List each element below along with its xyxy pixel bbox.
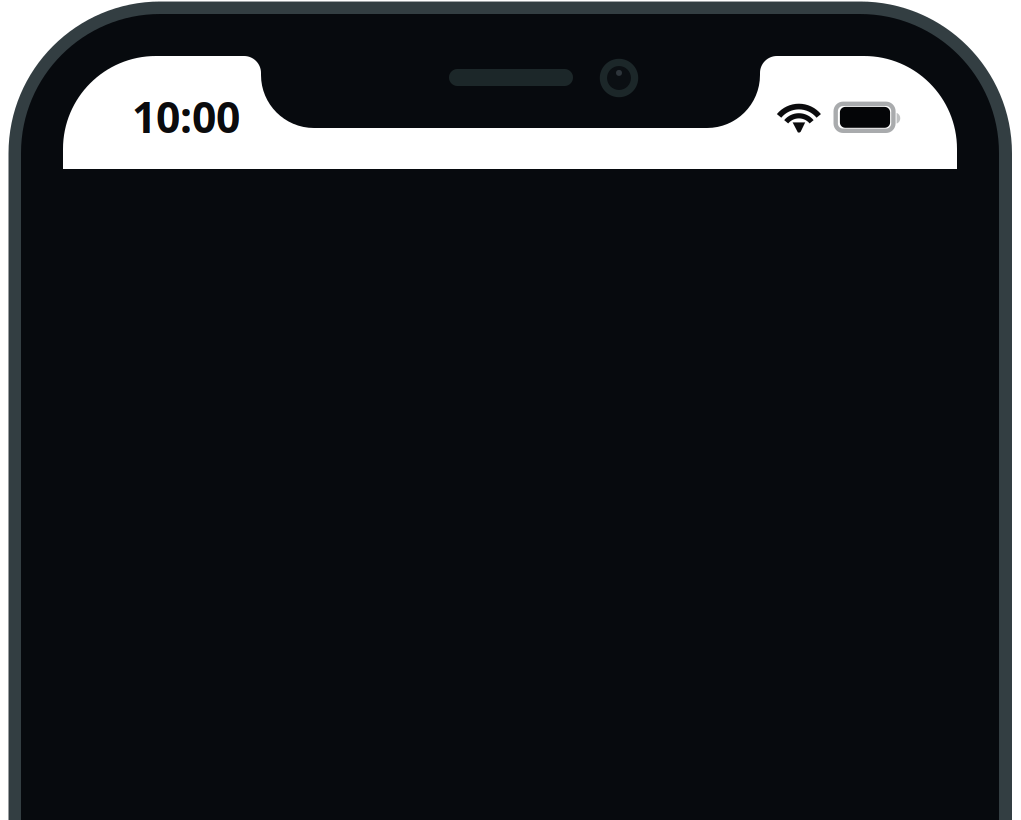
staticText: 10:00 (132, 88, 240, 145)
